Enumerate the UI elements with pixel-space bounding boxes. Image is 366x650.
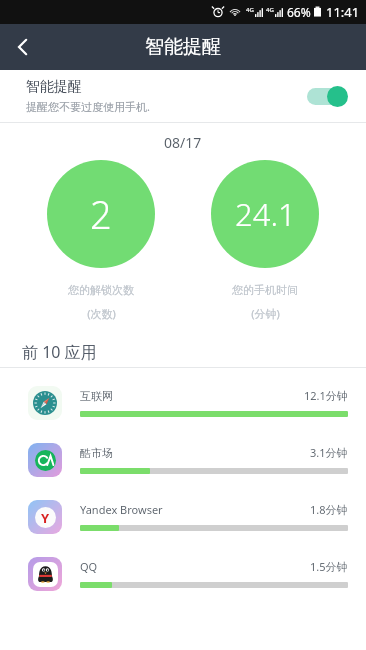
staticText: 4G — [266, 6, 274, 14]
staticText: 11:41 — [326, 3, 360, 21]
staticText: 智能提醒 — [145, 35, 221, 59]
staticText: 前 10 应用 — [22, 341, 97, 363]
button[interactable]: QQ — [0, 545, 366, 602]
button[interactable]: Y — [0, 488, 366, 545]
button[interactable]: Back — [0, 24, 46, 70]
staticText: 提醒您不要过度使用手机. — [26, 99, 150, 114]
staticText: Y — [41, 509, 50, 527]
staticText: 3.1分钟 — [310, 445, 348, 460]
staticText: 4G — [246, 6, 254, 14]
staticText: 66% — [287, 4, 311, 20]
staticText: 1.8分钟 — [310, 502, 348, 517]
button[interactable]: 智能提醒 — [0, 70, 366, 122]
button[interactable]: 24.1 — [211, 160, 319, 268]
button[interactable]: 互联网 — [0, 374, 366, 431]
staticText: QQ — [80, 559, 98, 574]
staticText: 1.5分钟 — [310, 559, 348, 574]
staticText: 您的解锁次数 — [68, 283, 134, 297]
staticText: Yandex Browser — [80, 502, 163, 517]
staticText: 08/17 — [164, 133, 202, 152]
button[interactable]: 酷市场 — [0, 431, 366, 488]
staticText: (分钟) — [251, 306, 280, 321]
button[interactable]: 2 — [47, 160, 155, 268]
staticText: 24.1 — [235, 193, 296, 235]
staticText: 2 — [90, 188, 112, 240]
staticText: (次数) — [87, 306, 116, 321]
staticText: 智能提醒 — [26, 78, 82, 96]
staticText: 互联网 — [80, 389, 113, 403]
button[interactable]: Smart reminder toggle — [306, 85, 348, 107]
staticText: 酷市场 — [80, 446, 113, 460]
staticText: 您的手机时间 — [232, 283, 298, 297]
staticText: 12.1分钟 — [304, 388, 348, 403]
